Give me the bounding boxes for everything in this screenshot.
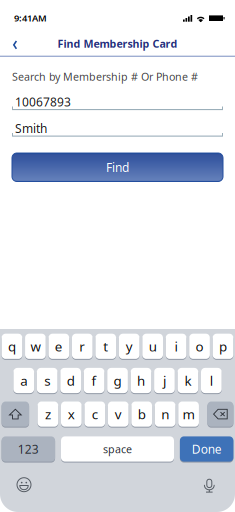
button[interactable]: v: [108, 401, 129, 427]
button[interactable]: h: [131, 367, 151, 394]
button[interactable]: b: [131, 401, 152, 427]
staticText: Find: [106, 159, 129, 175]
staticText: j: [163, 372, 166, 389]
staticText: q: [8, 337, 16, 355]
staticText: 9:41AM: [14, 12, 47, 24]
button[interactable]: Back: [0, 32, 28, 58]
button[interactable]: f: [84, 367, 104, 394]
button[interactable]: g: [107, 367, 128, 394]
button[interactable]: j: [154, 367, 175, 394]
button[interactable]: z: [38, 401, 58, 427]
staticText: y: [126, 337, 133, 355]
staticText: v: [115, 405, 122, 423]
staticText: b: [138, 405, 146, 423]
staticText: l: [210, 372, 213, 389]
button[interactable]: t: [95, 333, 116, 359]
staticText: e: [55, 337, 63, 355]
staticText: n: [161, 405, 169, 423]
button[interactable]: Find: [12, 153, 223, 181]
button[interactable]: k: [177, 367, 198, 394]
button[interactable]: a: [13, 367, 34, 394]
staticText: 123: [18, 441, 39, 457]
button[interactable]: Emoji: [12, 473, 35, 496]
staticText: c: [92, 405, 98, 423]
button[interactable]: q: [2, 333, 22, 359]
staticText: d: [67, 372, 75, 389]
staticText: Search by Membership # Or Phone #: [12, 69, 198, 84]
button[interactable]: m: [178, 401, 199, 427]
staticText: w: [30, 337, 40, 355]
staticText: Find Membership Card: [57, 36, 177, 51]
staticText: p: [219, 337, 227, 355]
button[interactable]: y: [119, 333, 139, 359]
button[interactable]: e: [48, 333, 69, 359]
button[interactable]: x: [61, 401, 82, 427]
button[interactable]: u: [142, 333, 163, 359]
staticText: space: [103, 442, 132, 456]
staticText: s: [44, 372, 50, 389]
staticText: k: [184, 372, 191, 389]
staticText: o: [195, 337, 203, 355]
button[interactable]: c: [84, 401, 105, 427]
button[interactable]: Shift: [2, 401, 29, 427]
button[interactable]: r: [72, 333, 93, 359]
button[interactable]: p: [213, 333, 233, 359]
staticText: a: [20, 372, 27, 389]
staticText: f: [92, 372, 97, 389]
staticText: Done: [192, 441, 222, 457]
button[interactable]: w: [25, 333, 46, 359]
button[interactable]: i: [166, 333, 186, 359]
staticText: h: [137, 372, 145, 389]
button[interactable]: d: [60, 367, 81, 394]
staticText: x: [68, 405, 75, 423]
staticText: 10067893: [15, 94, 71, 110]
button[interactable]: space: [61, 436, 174, 462]
staticText: m: [183, 405, 195, 423]
staticText: t: [103, 337, 108, 355]
button[interactable]: Done: [180, 436, 233, 462]
staticText: u: [149, 337, 157, 355]
staticText: z: [45, 405, 51, 423]
staticText: Smith: [15, 120, 47, 136]
button[interactable]: s: [37, 367, 58, 394]
button[interactable]: Delete: [207, 401, 233, 427]
staticText: g: [113, 372, 121, 389]
button[interactable]: l: [201, 367, 222, 394]
button[interactable]: o: [189, 333, 210, 359]
button[interactable]: n: [155, 401, 175, 427]
button[interactable]: Dictation: [199, 474, 220, 497]
button[interactable]: 123: [2, 436, 55, 462]
staticText: r: [79, 337, 85, 355]
staticText: i: [175, 337, 178, 355]
